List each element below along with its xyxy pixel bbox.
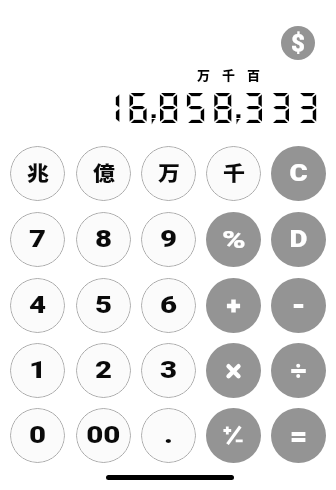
staticText: 万 — [158, 158, 180, 187]
staticText: 16,858,333 — [97, 88, 321, 127]
button[interactable]: Minus — [271, 278, 326, 333]
staticText: 9 — [160, 226, 178, 253]
staticText: 8 — [95, 226, 113, 253]
staticText: 5 — [95, 292, 113, 319]
button[interactable]: 5 — [76, 278, 131, 333]
button[interactable]: 9 — [141, 212, 196, 267]
button[interactable]: 0 — [10, 408, 65, 463]
button[interactable]: Currency — [281, 26, 315, 60]
button[interactable]: 6 — [141, 278, 196, 333]
button[interactable]: 8 — [76, 212, 131, 267]
button[interactable]: 3 — [141, 343, 196, 398]
staticText: . — [164, 422, 173, 449]
staticText: 2 — [95, 357, 113, 384]
staticText: C — [289, 160, 309, 187]
button[interactable]: 1 — [10, 343, 65, 398]
staticText: 万 — [197, 65, 211, 84]
button[interactable]: . — [141, 408, 196, 463]
staticText: 千 — [222, 65, 236, 84]
staticText: 0 — [29, 422, 47, 449]
button[interactable]: Toggle sign — [206, 408, 261, 463]
staticText: 7 — [29, 226, 47, 253]
button[interactable]: 7 — [10, 212, 65, 267]
button[interactable]: 2 — [76, 343, 131, 398]
staticText: 百 — [247, 65, 261, 84]
button[interactable]: % — [206, 212, 261, 267]
button[interactable]: Divide — [271, 343, 326, 398]
button[interactable]: Plus — [206, 278, 261, 333]
staticText: 00 — [86, 422, 121, 449]
button[interactable]: Multiply — [206, 343, 261, 398]
staticText: % — [222, 226, 246, 254]
staticText: 4 — [29, 292, 47, 319]
staticText: 千 — [223, 158, 245, 187]
button[interactable]: C — [271, 146, 326, 201]
button[interactable]: 00 — [76, 408, 131, 463]
staticText: 6 — [160, 292, 178, 319]
staticText: 3 — [160, 357, 178, 384]
button[interactable]: Equals — [271, 408, 326, 463]
button[interactable]: 兆 — [10, 146, 65, 201]
staticText: 兆 — [27, 158, 49, 187]
staticText: D — [289, 226, 307, 253]
staticText: $ — [291, 29, 305, 57]
button[interactable]: 千 — [206, 146, 261, 201]
button[interactable]: 億 — [76, 146, 131, 201]
button[interactable]: D — [271, 212, 326, 267]
button[interactable]: 万 — [141, 146, 196, 201]
staticText: 1 — [29, 357, 47, 384]
button[interactable]: 4 — [10, 278, 65, 333]
staticText: 億 — [93, 158, 115, 187]
